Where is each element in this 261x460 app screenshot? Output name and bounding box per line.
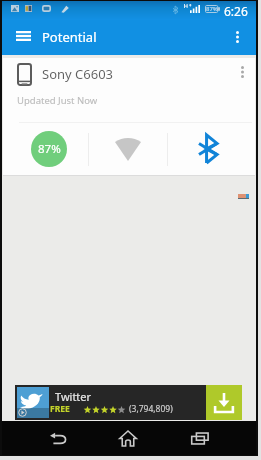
button[interactable]: Twitter: [15, 385, 242, 420]
button[interactable]: More options: [224, 20, 251, 55]
button[interactable]: Sony C6603: [3, 58, 255, 175]
staticText: (3,794,809): [129, 403, 173, 415]
button[interactable]: Install: [206, 385, 242, 420]
button[interactable]: 87%: [31, 131, 67, 167]
staticText: FREE: [50, 403, 70, 415]
staticText: Twitter: [55, 389, 92, 404]
staticText: Updated Just Now: [17, 94, 98, 107]
button[interactable]: Bluetooth: [189, 130, 227, 168]
button[interactable]: Back: [35, 421, 81, 455]
staticText: Potential: [42, 28, 97, 46]
button[interactable]: Home: [105, 421, 151, 455]
staticText: 87%: [38, 141, 61, 157]
staticText: 6:26: [224, 3, 248, 19]
button[interactable]: Recent apps: [177, 421, 223, 455]
staticText: Sony C6603: [42, 65, 114, 83]
button[interactable]: Wi-Fi: [109, 130, 147, 168]
button[interactable]: Device options: [231, 61, 253, 83]
staticText: 87%: [206, 5, 218, 13]
button[interactable]: Open navigation drawer: [10, 20, 37, 55]
